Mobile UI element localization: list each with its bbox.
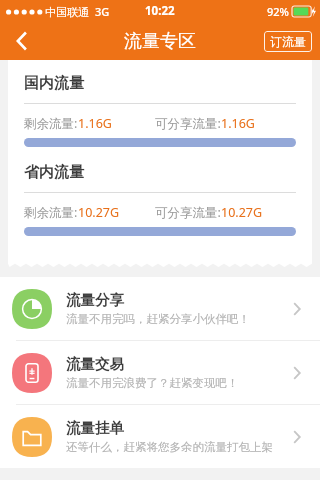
staticText: 流量挂单 xyxy=(66,419,124,437)
staticText: 10.27G xyxy=(78,204,120,221)
staticText: 92% xyxy=(267,4,289,19)
staticText: 流量分享 xyxy=(66,291,124,309)
staticText: 剩余流量: xyxy=(24,204,78,221)
staticText: 流量不用完浪费了？赶紧变现吧！ xyxy=(66,376,239,390)
staticText: 流量不用完吗，赶紧分享小伙伴吧！ xyxy=(66,312,250,326)
staticText: 中国联通 xyxy=(45,5,89,19)
staticText: 流量专区 xyxy=(124,30,196,53)
staticText: 10:22 xyxy=(145,3,175,19)
staticText: 3G xyxy=(95,4,110,19)
staticText: 国内流量 xyxy=(24,74,84,93)
staticText: 10.27G xyxy=(221,204,263,221)
staticText: 1.16G xyxy=(221,115,255,132)
button[interactable]: 流量挂单 xyxy=(0,405,320,468)
button[interactable]: 流量分享 xyxy=(0,277,320,341)
staticText: 可分享流量: xyxy=(155,115,221,132)
staticText: 省内流量 xyxy=(24,163,84,182)
button[interactable]: 流量交易 xyxy=(0,341,320,405)
staticText: 订流量 xyxy=(270,34,306,49)
button[interactable]: Back xyxy=(0,22,44,60)
staticText: 还等什么，赶紧将您多余的流量打包上架 xyxy=(66,440,273,454)
staticText: 流量交易 xyxy=(66,355,124,373)
staticText: 剩余流量: xyxy=(24,115,78,132)
button[interactable]: 订流量 xyxy=(264,31,312,52)
staticText: 1.16G xyxy=(78,115,112,132)
staticText: 可分享流量: xyxy=(155,204,221,221)
